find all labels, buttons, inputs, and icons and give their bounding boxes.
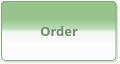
staticText: Order: [40, 22, 78, 40]
button[interactable]: Order: [0, 0, 120, 64]
staticText: Order: [41, 23, 79, 41]
